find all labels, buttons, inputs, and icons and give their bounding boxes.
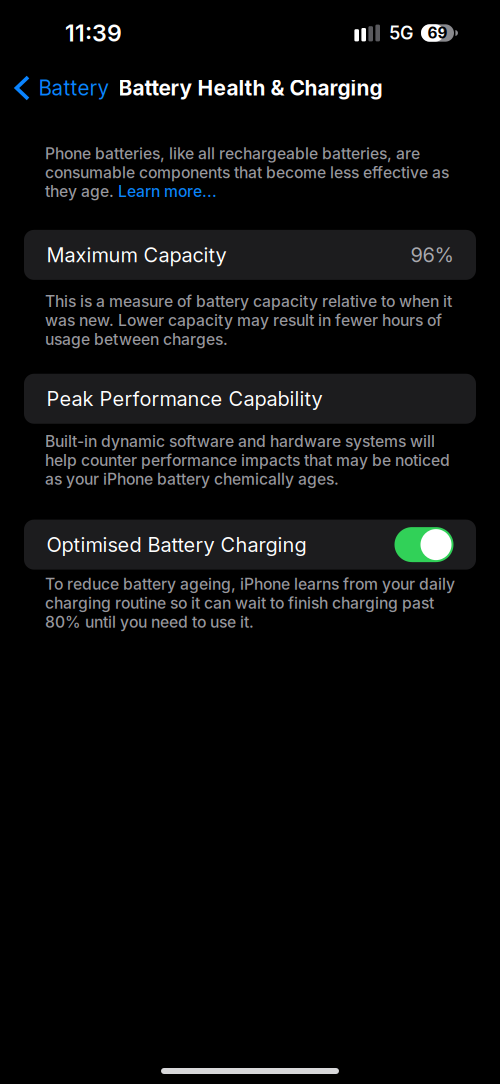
staticText: 96% (410, 243, 453, 267)
staticText: Built-in dynamic software and hardware s… (45, 432, 450, 489)
staticText: Optimised Battery Charging (46, 532, 306, 557)
staticText: Phone batteries, like all rechargeable b… (45, 144, 449, 201)
staticText: 69 (427, 24, 447, 42)
staticText: 5G (389, 22, 413, 44)
staticText: Maximum Capacity (46, 243, 226, 267)
staticText: Battery (38, 75, 109, 100)
button[interactable]: Peak Performance Capability (24, 374, 476, 424)
staticText: Peak Performance Capability (46, 387, 322, 411)
staticText: This is a measure of battery capacity re… (45, 292, 452, 349)
staticText: 11:39 (65, 19, 122, 47)
button[interactable]: Optimised Battery Charging, on (394, 527, 453, 562)
button[interactable]: Back to Battery (0, 70, 109, 106)
staticText: To reduce battery ageing, iPhone learns … (45, 575, 455, 631)
staticText: Battery Health & Charging (118, 75, 382, 101)
button[interactable]: Maximum Capacity (24, 230, 476, 280)
button[interactable]: Optimised Battery Charging (24, 520, 476, 570)
